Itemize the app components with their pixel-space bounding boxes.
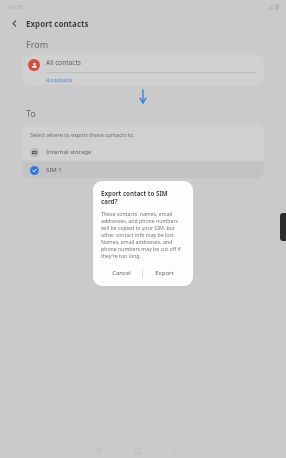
staticText: Select where to export these contacts to… — [30, 131, 135, 138]
button[interactable]: Cancel — [101, 267, 142, 279]
staticText: Export contact to SIM card? — [101, 189, 185, 205]
staticText: Export — [155, 269, 174, 277]
button[interactable]: SIM 1 — [22, 162, 264, 178]
staticText: From — [26, 38, 49, 50]
button[interactable]: Back — [6, 15, 22, 31]
staticText: 10:30 — [8, 3, 24, 11]
button[interactable]: Internal storage — [22, 144, 264, 160]
staticText: All contacts — [46, 58, 81, 67]
button[interactable]: 4 contacts — [46, 76, 73, 83]
staticText: These contacts' names, email addresses, … — [101, 210, 185, 259]
button[interactable]: Edge panel — [280, 213, 286, 241]
staticText: Internal storage — [46, 148, 92, 156]
staticText: To — [26, 107, 36, 119]
staticText: Export — [134, 190, 153, 198]
staticText: SIM 1 — [46, 166, 62, 174]
button[interactable]: Export — [143, 267, 185, 279]
button[interactable]: Export — [108, 187, 178, 201]
staticText: Cancel — [112, 269, 131, 277]
button[interactable]: All contacts — [22, 55, 264, 85]
staticText: Export contacts — [26, 18, 89, 29]
